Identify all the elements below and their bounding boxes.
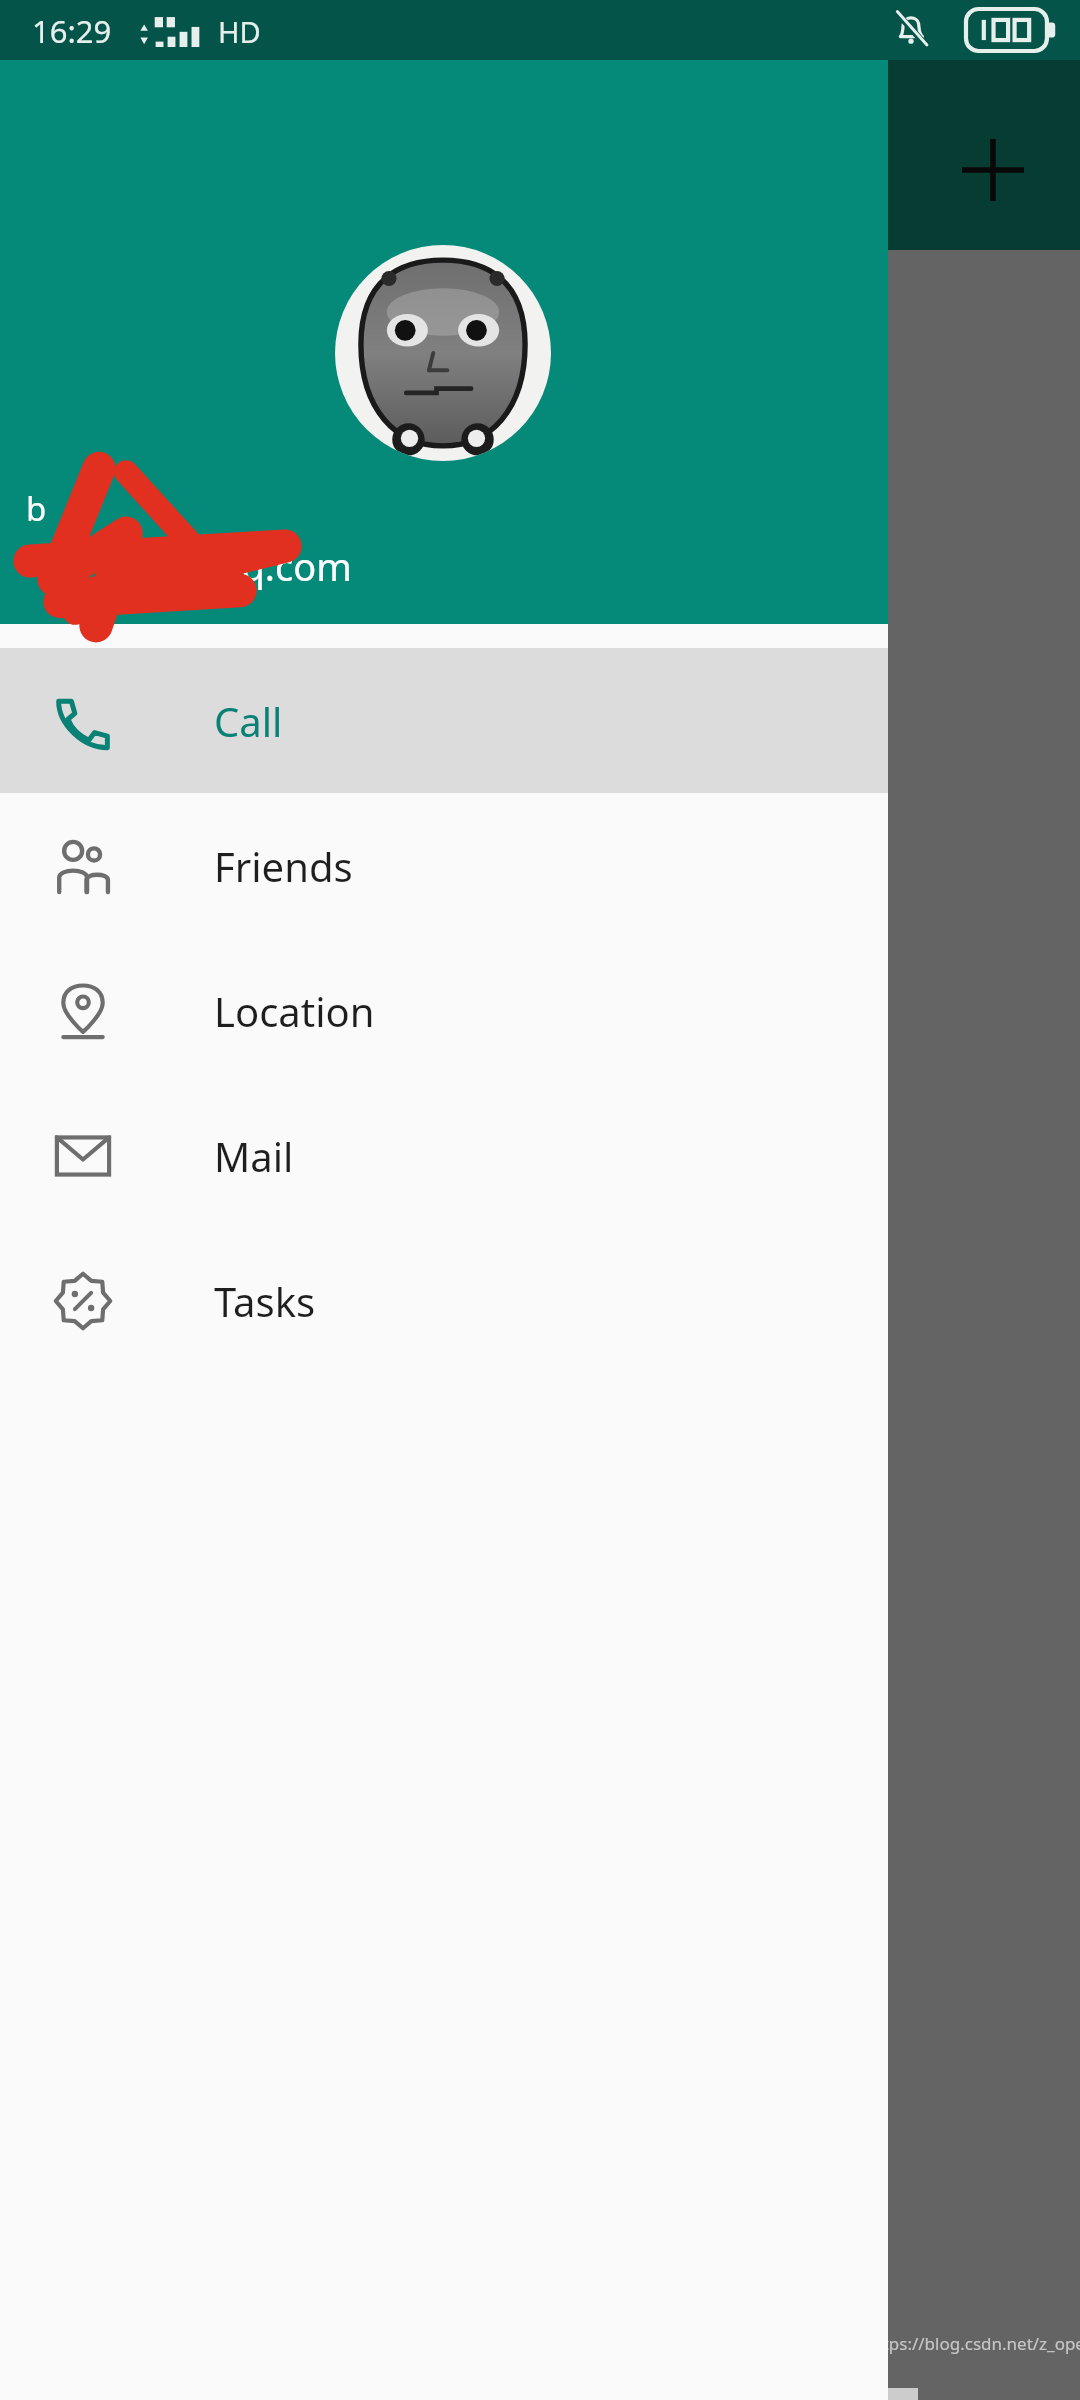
button[interactable]: Call [0, 648, 888, 793]
button[interactable]: Add [935, 112, 1051, 228]
button[interactable]: Friends [0, 793, 888, 938]
staticText: HD [218, 12, 261, 51]
staticText: 16:29 [32, 10, 112, 52]
button[interactable]: Location [0, 938, 888, 1083]
staticText: Friends [214, 839, 353, 893]
staticText: Tasks [214, 1274, 316, 1328]
staticText: Location [214, 984, 375, 1038]
button[interactable]: Tasks [0, 1228, 888, 1373]
staticText: @qq.com [16, 540, 352, 592]
button[interactable]: System nav 2 [674, 2388, 918, 2400]
button[interactable]: Mail [0, 1083, 888, 1228]
staticText: Call [214, 694, 283, 748]
staticText: b [26, 486, 47, 531]
staticText: Mail [214, 1129, 294, 1183]
staticText: https://blog.csdn.net/z_open [866, 2332, 1080, 2355]
